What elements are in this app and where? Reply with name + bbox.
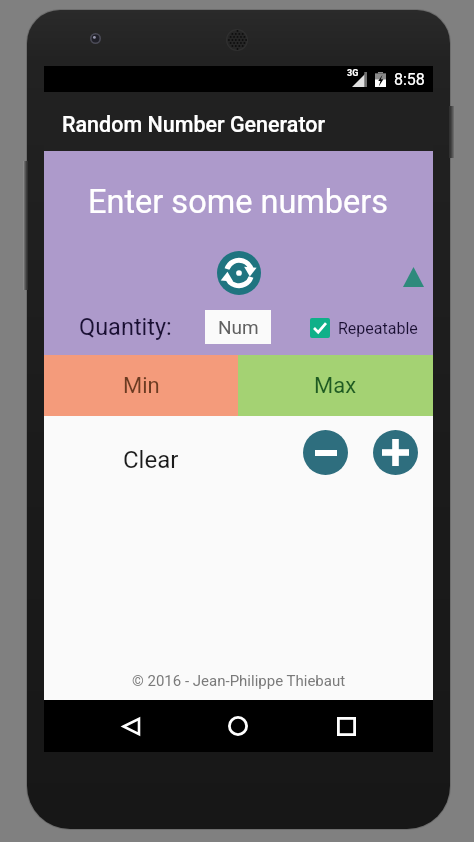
button[interactable]: Num [205, 310, 271, 344]
staticText: 3G [347, 68, 359, 79]
staticText: Max [314, 373, 357, 399]
staticText: Repeatable [338, 319, 418, 338]
button[interactable]: Recent apps [322, 700, 370, 752]
staticText: Random Number Generator [62, 112, 326, 137]
staticText: 8:58 [394, 70, 425, 89]
staticText: Enter some numbers [88, 183, 389, 221]
button[interactable]: Min [44, 355, 238, 416]
button[interactable]: Clear [123, 446, 179, 474]
button[interactable]: Generate random numbers [217, 251, 261, 295]
button[interactable]: Decrease [303, 430, 348, 475]
button[interactable]: Repeatable [310, 318, 418, 338]
button[interactable]: Increase [373, 430, 418, 475]
staticText: Quantity: [79, 313, 172, 341]
staticText: Min [123, 373, 160, 399]
staticText: Num [218, 316, 259, 338]
staticText: © 2016 - Jean-Philippe Thiebaut [132, 672, 346, 690]
button[interactable]: Home [214, 700, 262, 752]
button[interactable]: Max [238, 355, 433, 416]
button[interactable]: Back [107, 700, 155, 752]
